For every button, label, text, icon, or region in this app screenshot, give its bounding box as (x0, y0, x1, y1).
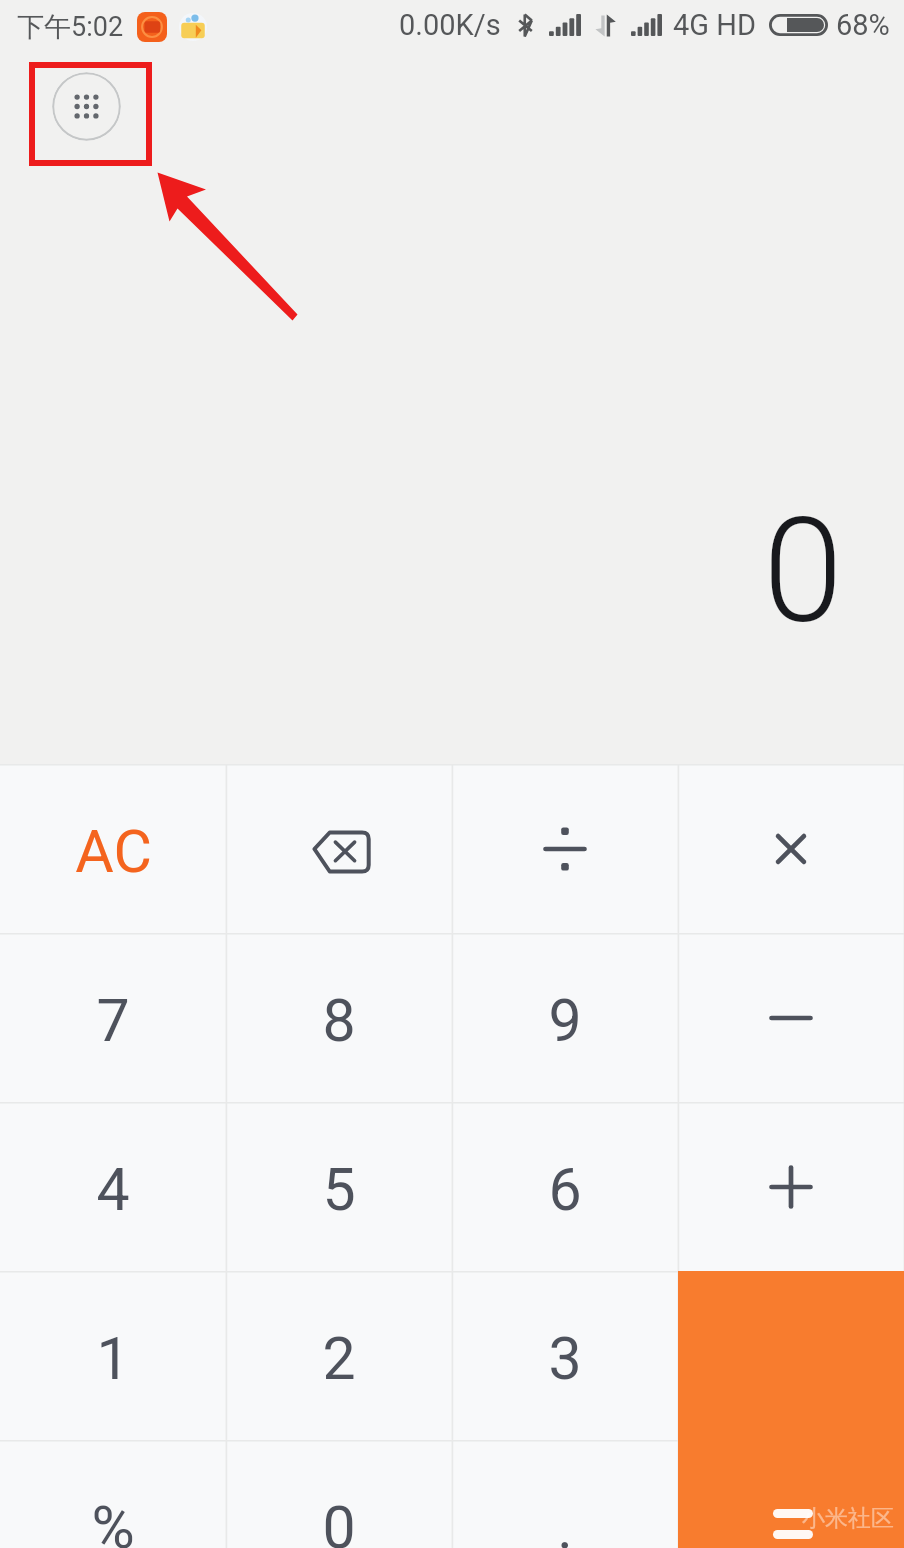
button[interactable]: . (452, 1440, 678, 1548)
staticText: 3 (548, 1324, 582, 1393)
staticText: 68% (836, 8, 890, 42)
button[interactable]: 6 (452, 1102, 678, 1271)
button[interactable]: AC (0, 764, 226, 933)
button[interactable]: Equals (678, 1440, 904, 1548)
staticText: 下午5:02 (17, 10, 124, 44)
button[interactable]: 4 (0, 1102, 226, 1271)
staticText: 0 (322, 1493, 356, 1548)
staticText: 1 (96, 1324, 130, 1393)
staticText: 9 (548, 986, 582, 1055)
staticText: 5 (322, 1155, 356, 1224)
button[interactable]: 0 (226, 1440, 452, 1548)
staticText: AC (75, 817, 152, 886)
button[interactable]: 3 (452, 1271, 678, 1440)
button[interactable]: 9 (452, 933, 678, 1102)
button[interactable]: Clear (226, 764, 452, 933)
button[interactable]: 2 (226, 1271, 452, 1440)
staticText: 0 (763, 487, 843, 656)
button[interactable]: % (0, 1440, 226, 1548)
staticText: . (557, 1493, 573, 1548)
button[interactable]: 7 (0, 933, 226, 1102)
button[interactable]: Menu (52, 72, 121, 141)
button[interactable]: 5 (226, 1102, 452, 1271)
button[interactable]: Multiply (678, 764, 904, 933)
staticText: 小米社区 (802, 1504, 894, 1533)
button[interactable]: Minus (678, 933, 904, 1102)
staticText: 8 (322, 986, 356, 1055)
button[interactable]: 1 (0, 1271, 226, 1440)
staticText: 2 (322, 1324, 356, 1393)
staticText: % (91, 1493, 135, 1548)
staticText: 0.00K/s (399, 8, 501, 42)
button[interactable]: Plus (678, 1102, 904, 1271)
button[interactable]: 8 (226, 933, 452, 1102)
staticText: 4 (96, 1155, 130, 1224)
staticText: 4G HD (673, 8, 756, 42)
staticText: 6 (548, 1155, 582, 1224)
button[interactable]: Divide (452, 764, 678, 933)
staticText: 7 (96, 986, 130, 1055)
